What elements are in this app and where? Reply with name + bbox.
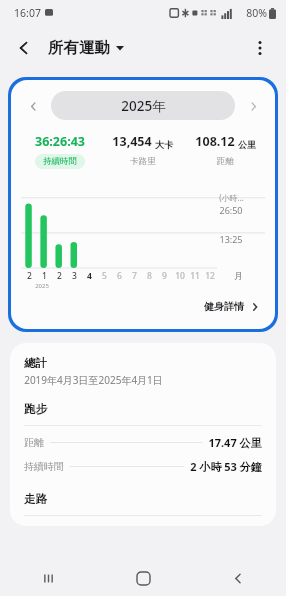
button[interactable]: More options [244,32,276,64]
staticText: 8 [147,270,152,282]
staticText: 2 [57,270,62,282]
staticText: 持續時間 [43,156,77,167]
staticText: 13,454 [112,133,152,150]
staticText: 2025 [35,282,49,290]
staticText: 26:50 [219,204,243,216]
button[interactable]: 所有運動 [46,34,126,62]
staticText: 5 [102,270,107,282]
button[interactable]: Previous year [21,94,45,118]
staticText: 10 [175,270,185,282]
button[interactable]: Back [191,560,286,596]
staticText: 9 [162,270,167,282]
button[interactable]: Home [96,560,191,596]
staticText: 1 [42,270,47,282]
staticText: 公里 [238,139,256,150]
staticText: 持續時間 [24,460,64,473]
staticText: 距離 [217,156,234,167]
staticText: 月 [234,271,243,282]
staticText: 走路 [24,492,47,506]
staticText: (小時… [219,192,244,203]
staticText: 2 小時 53 分鐘 [190,459,262,474]
staticText: 4 [87,270,92,282]
button[interactable]: Back [8,32,40,64]
staticText: 3 [72,270,77,282]
staticText: 總計 [24,356,47,370]
staticText: 11 [190,270,200,282]
staticText: 108.12 [195,133,235,150]
button[interactable]: 健身詳情 [200,296,263,317]
staticText: 6 [117,270,122,282]
staticText: 距離 [24,436,44,449]
button[interactable]: Recent apps [0,560,96,596]
staticText: 7 [132,270,137,282]
staticText: 所有運動 [48,38,110,58]
staticText: 16:07 [14,6,41,20]
staticText: 卡路里 [130,156,156,167]
staticText: 2019年4月3日至2025年4月1日 [24,373,163,387]
button[interactable]: 2025年 [51,91,235,120]
staticText: 2 [27,270,32,282]
staticText: 2025年 [121,97,166,115]
button[interactable]: Previous year [11,80,275,329]
staticText: 36:26:43 [35,133,85,150]
staticText: 12 [205,270,215,282]
staticText: 大卡 [155,139,173,150]
staticText: 健身詳情 [204,300,244,313]
staticText: 跑步 [24,402,47,416]
staticText: 17.47 公里 [208,435,262,450]
staticText: 80% [246,6,267,20]
staticText: 13:25 [219,233,243,245]
button[interactable]: Next year [241,94,265,118]
